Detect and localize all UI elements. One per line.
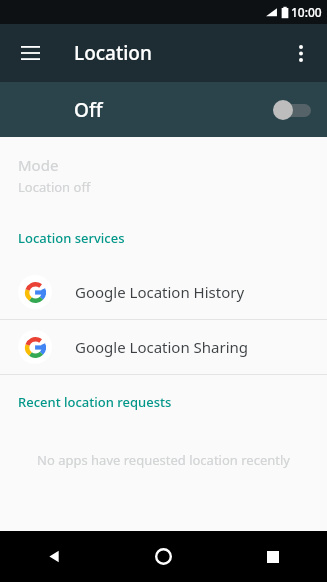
staticText: 10:00	[291, 4, 322, 20]
staticText: Off	[74, 97, 103, 123]
button[interactable]: Google Location History	[0, 265, 327, 319]
button[interactable]: Home	[109, 531, 218, 582]
button[interactable]: Google Location Sharing	[0, 320, 327, 374]
staticText: Location off	[18, 178, 91, 196]
button[interactable]: Recent apps	[218, 531, 327, 582]
button[interactable]: More options	[279, 31, 323, 75]
staticText: Mode	[18, 155, 59, 175]
staticText: No apps have requested location recently	[16, 451, 311, 469]
staticText: Location	[74, 40, 152, 66]
staticText: Recent location requests	[18, 393, 172, 411]
staticText: Google Location History	[75, 282, 245, 302]
button[interactable]: Back	[0, 531, 109, 582]
staticText: Location services	[18, 229, 125, 247]
button[interactable]: Open navigation drawer	[8, 31, 52, 75]
staticText: Google Location Sharing	[75, 337, 249, 357]
button[interactable]: Mode	[0, 155, 327, 196]
button[interactable]: Off	[0, 82, 327, 137]
